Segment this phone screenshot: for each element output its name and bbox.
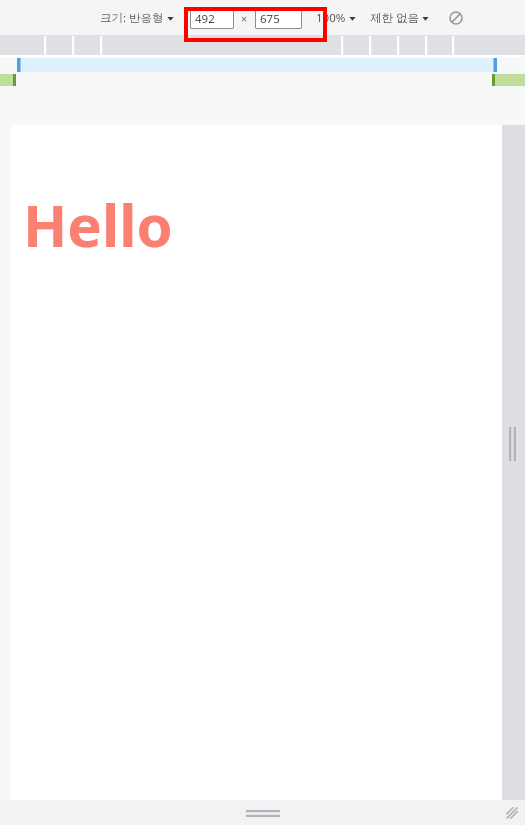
button[interactable]: Resize bbox=[502, 803, 522, 823]
staticText: 100% bbox=[316, 10, 346, 26]
staticText: 크기: 반응형 bbox=[100, 10, 164, 26]
button[interactable]: 492 bbox=[190, 8, 234, 29]
button[interactable]: Disable cache bbox=[445, 7, 467, 29]
staticText: 제한 없음 bbox=[370, 10, 419, 26]
button[interactable]: Resize height bbox=[240, 803, 286, 823]
button[interactable]: 675 bbox=[255, 8, 302, 29]
staticText: 492 bbox=[195, 11, 215, 27]
staticText: × bbox=[241, 11, 248, 26]
button[interactable]: 크기: 반응형 bbox=[98, 6, 176, 30]
button[interactable]: 100% bbox=[314, 6, 358, 30]
staticText: 675 bbox=[260, 11, 280, 27]
button[interactable]: Resize width bbox=[505, 421, 519, 467]
staticText: Hello bbox=[23, 185, 173, 264]
button[interactable]: 제한 없음 bbox=[368, 6, 431, 30]
